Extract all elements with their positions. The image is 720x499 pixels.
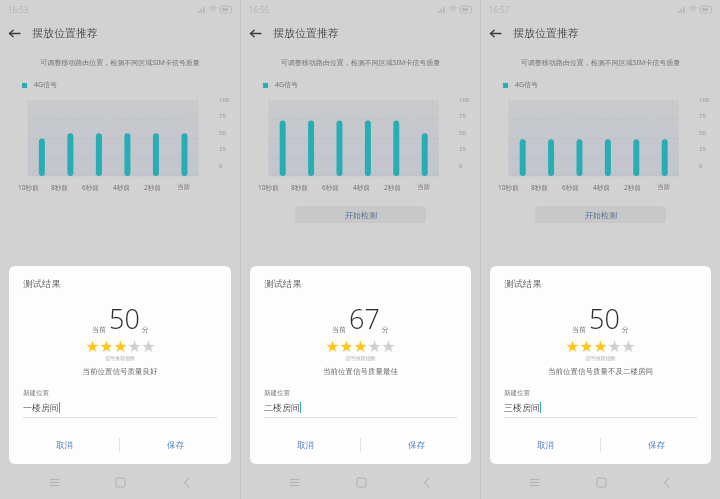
staticText: 2秒前 xyxy=(144,183,161,192)
staticText: 新建位置 xyxy=(23,389,49,397)
staticText: 开始检测 xyxy=(345,210,377,220)
staticText: 6秒前 xyxy=(82,183,99,192)
staticText: 取消 xyxy=(537,440,554,451)
button[interactable]: 开始检测 xyxy=(295,206,426,223)
button[interactable]: 返回 xyxy=(481,19,509,47)
staticText: 测试结果 xyxy=(504,278,542,290)
staticText: 可调整移动路由位置，检测不同区域SIM卡信号质量 xyxy=(0,58,240,68)
staticText: 75 xyxy=(699,112,706,120)
button[interactable]: 最近任务 xyxy=(281,469,307,495)
staticText: 当前 xyxy=(417,183,430,191)
staticText: 当前 xyxy=(92,325,106,334)
staticText: 信号推荐指数 xyxy=(250,355,471,361)
staticText: 信号推荐指数 xyxy=(9,355,231,361)
button[interactable]: 保存 xyxy=(120,430,231,460)
staticText: 分 xyxy=(622,325,629,334)
staticText: 6秒前 xyxy=(562,183,579,192)
button[interactable]: 返回 xyxy=(174,469,200,495)
staticText: 三楼房间 xyxy=(504,402,540,413)
staticText: 75 xyxy=(459,112,466,120)
staticText: 当前位置信号质量良好 xyxy=(9,367,231,376)
staticText: 2秒前 xyxy=(384,183,401,192)
staticText: 保存 xyxy=(648,440,665,451)
staticText: 4秒前 xyxy=(353,183,370,192)
button[interactable]: 返回 xyxy=(414,469,440,495)
staticText: 0 xyxy=(699,162,703,170)
button[interactable]: 保存 xyxy=(601,430,711,460)
staticText: 当前位置信号质量不及二楼房间 xyxy=(490,367,711,376)
staticText: 4秒前 xyxy=(593,183,610,192)
staticText: 25 xyxy=(699,145,706,153)
staticText: 当前 xyxy=(332,325,346,334)
button[interactable]: 主页 xyxy=(348,469,374,495)
staticText: 测试结果 xyxy=(264,278,302,290)
button[interactable]: 返回 xyxy=(241,19,269,47)
button[interactable]: 返回 xyxy=(654,469,680,495)
staticText: 当前 xyxy=(657,183,670,191)
button[interactable]: 最近任务 xyxy=(521,469,547,495)
staticText: 50 xyxy=(219,129,226,137)
staticText: 10秒前 xyxy=(498,183,519,192)
staticText: 25 xyxy=(219,145,226,153)
staticText: 8秒前 xyxy=(531,183,548,192)
button[interactable]: 主页 xyxy=(588,469,614,495)
staticText: 100 xyxy=(699,96,710,104)
staticText: 摆放位置推荐 xyxy=(32,26,98,40)
staticText: 摆放位置推荐 xyxy=(513,26,579,40)
staticText: 新建位置 xyxy=(264,389,290,397)
staticText: 可调整移动路由位置，检测不同区域SIM卡信号质量 xyxy=(241,58,480,68)
staticText: 一楼房间 xyxy=(23,402,59,413)
staticText: 取消 xyxy=(56,440,73,451)
button[interactable]: 取消 xyxy=(9,430,119,460)
staticText: 100 xyxy=(219,96,230,104)
button[interactable]: 返回 xyxy=(0,19,28,47)
staticText: 50 xyxy=(589,300,620,337)
staticText: 保存 xyxy=(408,440,425,451)
staticText: 100 xyxy=(459,96,470,104)
staticText: 10秒前 xyxy=(18,183,39,192)
staticText: 4秒前 xyxy=(113,183,130,192)
staticText: 4G信号 xyxy=(34,80,58,90)
staticText: 当前位置信号质量最佳 xyxy=(250,367,471,376)
staticText: 67 xyxy=(349,300,380,337)
staticText: 信号推荐指数 xyxy=(490,355,711,361)
button[interactable]: 最近任务 xyxy=(41,469,67,495)
staticText: 当前 xyxy=(572,325,586,334)
staticText: 16:55 xyxy=(249,4,270,15)
staticText: 二楼房间 xyxy=(264,402,300,413)
button[interactable]: 取消 xyxy=(250,430,360,460)
staticText: 6秒前 xyxy=(322,183,339,192)
button[interactable]: 取消 xyxy=(490,430,600,460)
staticText: 开始检测 xyxy=(585,210,617,220)
staticText: 新建位置 xyxy=(504,389,530,397)
staticText: 0 xyxy=(219,162,223,170)
staticText: 摆放位置推荐 xyxy=(273,26,339,40)
staticText: 0 xyxy=(459,162,463,170)
staticText: 50 xyxy=(699,129,706,137)
button[interactable]: 主页 xyxy=(107,469,133,495)
staticText: 取消 xyxy=(297,440,314,451)
staticText: 8秒前 xyxy=(51,183,68,192)
staticText: 16:57 xyxy=(489,4,510,15)
staticText: 分 xyxy=(142,325,149,334)
staticText: 4G信号 xyxy=(275,80,299,90)
staticText: 50 xyxy=(459,129,466,137)
staticText: 16:53 xyxy=(8,4,29,15)
staticText: 10秒前 xyxy=(258,183,279,192)
staticText: 2秒前 xyxy=(624,183,641,192)
button[interactable]: 保存 xyxy=(361,430,471,460)
staticText: 测试结果 xyxy=(23,278,61,290)
staticText: 当前 xyxy=(177,183,190,191)
staticText: 分 xyxy=(382,325,389,334)
staticText: 75 xyxy=(219,112,226,120)
staticText: 8秒前 xyxy=(291,183,308,192)
staticText: 保存 xyxy=(167,440,184,451)
staticText: 50 xyxy=(109,300,140,337)
staticText: 25 xyxy=(459,145,466,153)
staticText: 可调整移动路由位置，检测不同区域SIM卡信号质量 xyxy=(481,58,720,68)
button[interactable]: 开始检测 xyxy=(535,206,666,223)
staticText: 4G信号 xyxy=(515,80,539,90)
